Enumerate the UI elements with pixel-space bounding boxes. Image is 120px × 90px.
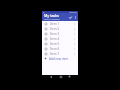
staticText: Item 4 [50, 37, 60, 41]
button[interactable]: Item 2 [42, 26, 78, 31]
staticText: Item 3 [50, 32, 60, 36]
staticText: Item 1 [50, 22, 60, 26]
button[interactable]: Add new item [42, 56, 78, 61]
button[interactable]: Item 7 [42, 51, 78, 56]
staticText: Item 2 [50, 27, 60, 31]
button[interactable]: Row menu [73, 32, 76, 35]
button[interactable]: Row menu [73, 47, 76, 50]
button[interactable]: Item 1 [42, 21, 78, 26]
staticText: Add new item [49, 57, 69, 61]
staticText: Item 6 [50, 47, 60, 51]
button[interactable]: Item 6 [42, 46, 78, 51]
button[interactable]: Recents [68, 75, 71, 78]
button[interactable]: Done [68, 15, 73, 20]
staticText: drag to reorder [44, 18, 60, 21]
button[interactable]: More options [73, 15, 77, 19]
button[interactable]: Row menu [73, 37, 76, 40]
staticText: Item 7 [50, 52, 60, 56]
button[interactable]: Home [59, 75, 62, 78]
button[interactable]: Back [49, 75, 52, 78]
button[interactable]: Item 5 [42, 41, 78, 46]
staticText: My tasks [44, 13, 60, 18]
button[interactable]: Item 4 [42, 36, 78, 41]
button[interactable]: Row menu [73, 27, 76, 30]
button[interactable]: Row menu [73, 52, 76, 55]
staticText: Item 5 [50, 42, 60, 46]
button[interactable]: Row menu [73, 42, 76, 45]
button[interactable]: Item 3 [42, 31, 78, 36]
button[interactable]: Row menu [73, 22, 76, 25]
